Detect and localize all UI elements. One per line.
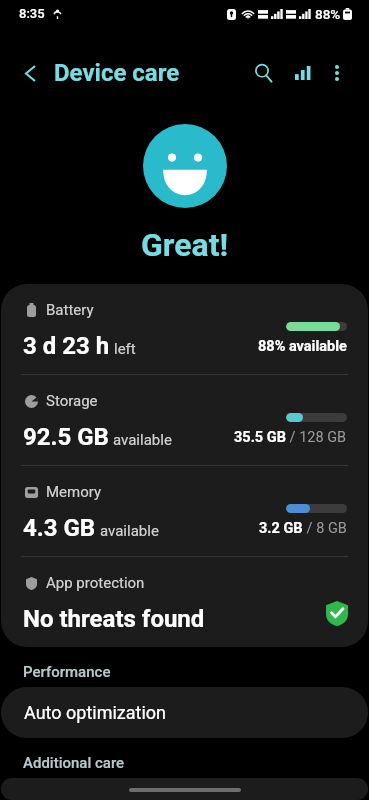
staticText: 4.3 GB [23,514,96,542]
button[interactable] [1,778,368,800]
staticText: / 8 GB [303,520,347,537]
button[interactable]: Auto optimization [1,687,368,738]
button[interactable]: Back [8,51,52,95]
button[interactable]: Usage statistics [281,51,325,95]
staticText: No threats found [23,605,205,633]
staticText: Performance [23,663,111,681]
staticText: Additional care [23,754,125,772]
staticText: 88% [315,6,341,22]
staticText: available [113,431,172,449]
staticText: 35.5 GB [234,429,286,446]
staticText: 8:35 [19,6,45,21]
staticText: App protection [46,574,145,592]
staticText: Battery [46,301,94,319]
staticText: 88% available [258,338,347,355]
staticText: 92.5 GB [23,423,109,451]
button[interactable]: Storage [1,375,368,465]
staticText: Great! [141,226,229,264]
button[interactable]: Search [242,51,286,95]
staticText: left [114,340,136,358]
staticText: 3.2 GB [259,520,303,537]
staticText: 3 d 23 h [23,332,110,360]
staticText: Storage [46,392,98,410]
button[interactable]: Memory [1,466,368,556]
staticText: available [100,522,159,540]
button[interactable]: Battery [1,284,368,374]
button[interactable]: App protection [1,557,368,647]
staticText: / 128 GB [286,429,347,446]
staticText: Device care [54,59,180,87]
staticText: Memory [46,483,102,501]
button[interactable]: More options [315,51,359,95]
staticText: Auto optimization [24,702,167,723]
